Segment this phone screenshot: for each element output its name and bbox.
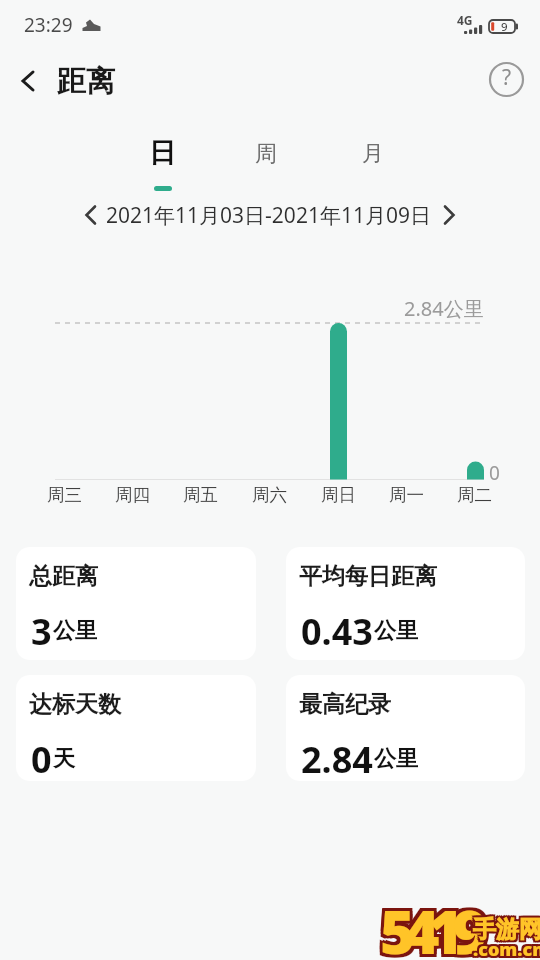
staticText: .com.cn [473, 939, 540, 960]
staticText: 3 [31, 607, 52, 649]
staticText: 公里 [53, 617, 97, 645]
staticText: 最高纪录 [299, 690, 391, 719]
staticText: 5419 [380, 893, 477, 960]
staticText: 周二 [457, 484, 492, 506]
button[interactable] [76, 200, 106, 230]
staticText: 5419 [383, 887, 480, 960]
staticText: 达标天数 [29, 690, 121, 719]
staticText: 5419 [383, 890, 480, 960]
button[interactable]: 日 [117, 126, 207, 180]
staticText: 周三 [47, 484, 82, 506]
staticText: 距离 [57, 63, 115, 100]
staticText: 0 [31, 735, 52, 777]
staticText: .com.cn [471, 937, 540, 960]
staticText: 0.43 [301, 607, 373, 649]
staticText: 手游网 [475, 917, 540, 946]
staticText: 日 [149, 136, 176, 170]
staticText: 公里 [374, 617, 418, 645]
button[interactable]: 总距离 [16, 547, 256, 660]
staticText: 5419 [377, 893, 474, 960]
staticText: .com.cn [471, 939, 540, 960]
staticText: .com.cn [473, 937, 540, 960]
staticText: .com.cn [475, 937, 540, 960]
staticText: 手游网 [471, 915, 540, 944]
staticText: 周六 [252, 484, 287, 506]
staticText: 2.84公里 [404, 295, 484, 322]
staticText: 周一 [389, 484, 424, 506]
staticText: 0 [489, 460, 500, 486]
staticText: 手游网 [473, 913, 540, 942]
staticText: 2021年11月03日-2021年11月09日 [106, 201, 431, 230]
button[interactable]: 最高纪录 [286, 675, 525, 781]
staticText: 周四 [115, 484, 150, 506]
staticText: .com.cn [475, 935, 540, 960]
staticText: 平均每日距离 [299, 562, 437, 591]
staticText: 5419 [380, 890, 477, 960]
staticText: 5419 [380, 887, 477, 960]
staticText: 月 [362, 140, 384, 168]
button[interactable]: ? [488, 61, 525, 98]
button[interactable]: 平均每日距离 [286, 547, 525, 660]
staticText: 公里 [374, 745, 418, 773]
staticText: 2.84 [301, 735, 373, 777]
staticText: .com.cn [473, 935, 540, 960]
button[interactable]: 周 [221, 132, 311, 176]
staticText: 周日 [321, 484, 356, 506]
staticText: 天 [53, 745, 75, 773]
staticText: 23:29 [24, 12, 73, 38]
button[interactable] [12, 67, 44, 95]
staticText: 周五 [183, 484, 218, 506]
staticText: 手游网 [471, 913, 540, 942]
button[interactable] [434, 200, 464, 230]
staticText: 手游网 [473, 915, 540, 944]
staticText: 4G [457, 12, 473, 28]
staticText: 9 [501, 19, 508, 35]
button[interactable]: 达标天数 [16, 675, 256, 781]
staticText: 总距离 [29, 562, 98, 591]
staticText: .com.cn [471, 935, 540, 960]
staticText: ? [502, 63, 512, 92]
button[interactable]: 月 [328, 132, 418, 176]
staticText: 手游网 [473, 917, 540, 946]
staticText: 5419 [383, 893, 480, 960]
staticText: 手游网 [471, 917, 540, 946]
staticText: 手游网 [475, 915, 540, 944]
staticText: 手游网 [475, 913, 540, 942]
staticText: 5419 [377, 887, 474, 960]
staticText: 周 [255, 140, 277, 168]
staticText: 5419 [377, 890, 474, 960]
staticText: .com.cn [475, 939, 540, 960]
